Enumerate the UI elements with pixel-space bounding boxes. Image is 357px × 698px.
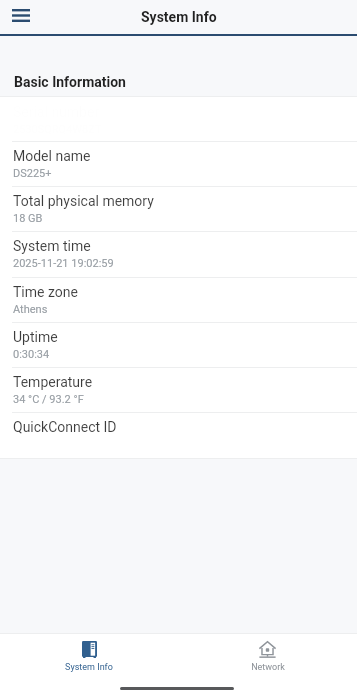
staticText: Model name (13, 148, 91, 164)
button[interactable]: Uptime (0, 322, 357, 367)
button[interactable]: Open navigation menu (4, 2, 38, 32)
staticText: Athens (13, 303, 48, 316)
staticText: System Info (141, 9, 217, 25)
button[interactable]: Total physical memory (0, 186, 357, 231)
staticText: Uptime (13, 329, 58, 345)
button[interactable]: Time zone (0, 277, 357, 322)
staticText: Time zone (13, 284, 78, 300)
button[interactable]: Temperature (0, 367, 357, 412)
button[interactable]: QuickConnect ID (0, 412, 357, 458)
staticText: Temperature (13, 374, 93, 390)
staticText: Basic Information (14, 74, 126, 90)
button[interactable]: System time (0, 231, 357, 277)
staticText: QuickConnect ID (13, 419, 117, 435)
staticText: DS225+ (13, 167, 52, 180)
staticText: System Info (65, 662, 113, 673)
staticText: 18 GB (13, 212, 43, 225)
staticText: System time (13, 238, 91, 254)
button[interactable]: Model name (0, 141, 357, 186)
button[interactable]: System Info (0, 634, 178, 673)
staticText: 2025-11-21 19:02:59 (13, 257, 114, 270)
staticText: Network (251, 662, 285, 673)
staticText: 34 °C / 93.2 °F (13, 393, 84, 406)
button[interactable]: Network (178, 634, 357, 673)
staticText: 0:30:34 (13, 348, 50, 361)
staticText: Total physical memory (13, 193, 154, 209)
